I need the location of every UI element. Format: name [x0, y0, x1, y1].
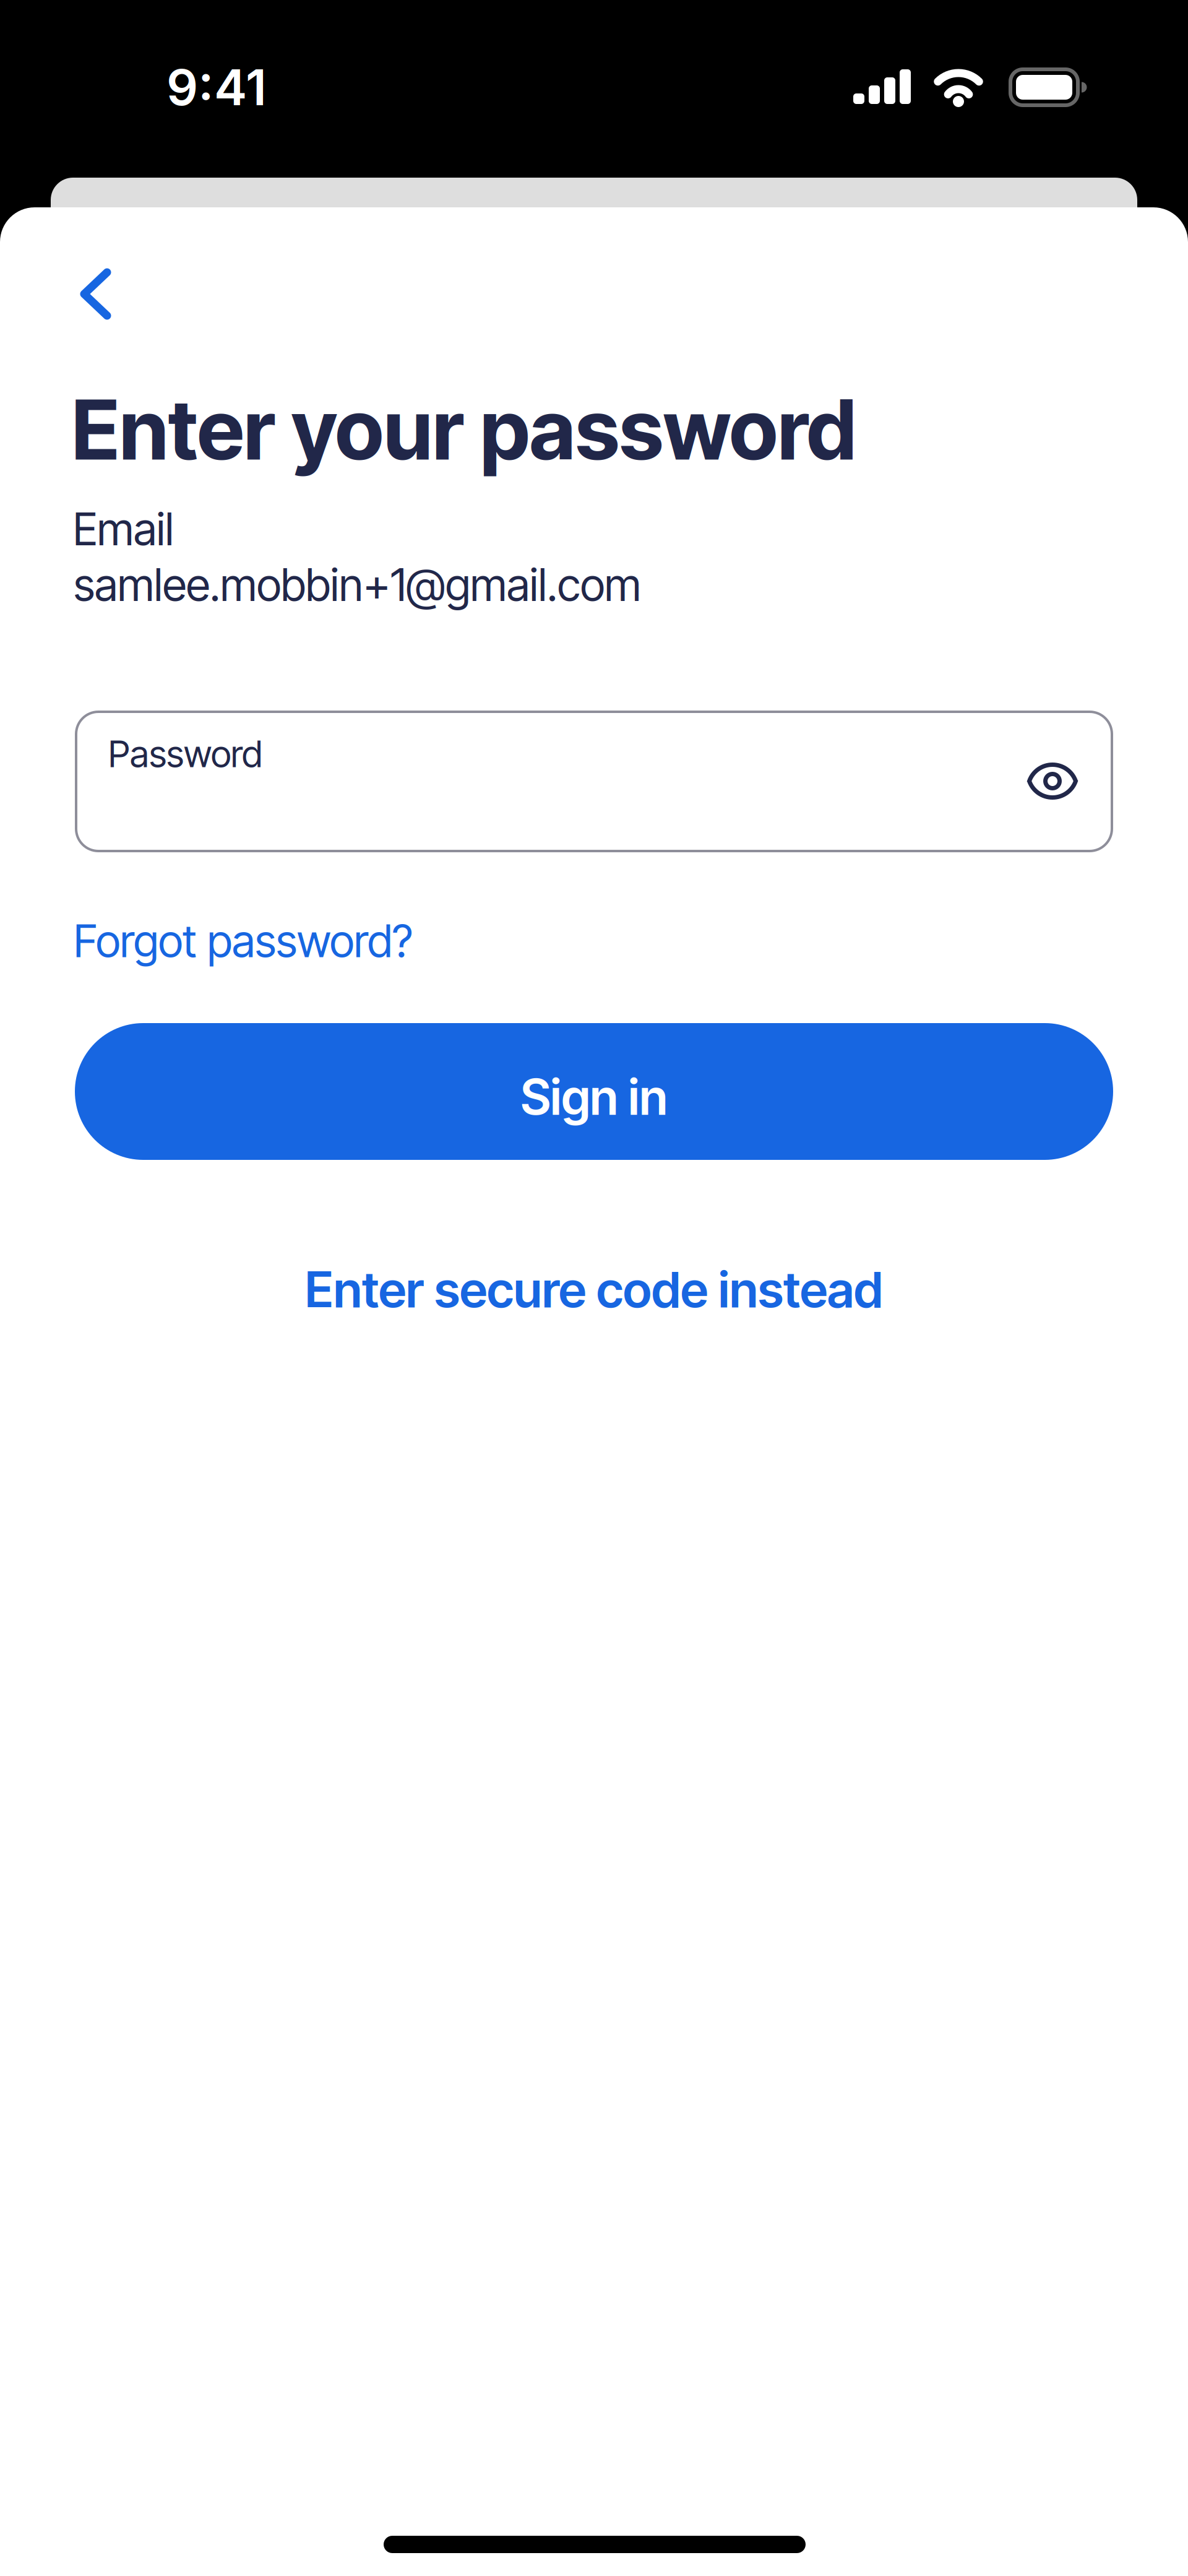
staticText: Enter secure code instead	[305, 1259, 883, 1319]
staticText: Enter your password	[72, 380, 856, 479]
button[interactable]: Back	[0, 253, 1188, 335]
staticText: samlee.mobbin+1@gmail.com	[74, 558, 641, 612]
staticText: 9:41	[166, 57, 267, 117]
button[interactable]: Sign in	[75, 1023, 1113, 1160]
staticText: Forgot password?	[74, 914, 413, 968]
staticText: Sign in	[521, 1067, 667, 1126]
staticText: Email	[73, 502, 174, 556]
button[interactable]: Enter secure code instead	[305, 1259, 883, 1319]
button[interactable]: Show password	[1002, 738, 1103, 824]
staticText: Password	[108, 732, 262, 776]
button[interactable]: Forgot password?	[74, 914, 413, 968]
